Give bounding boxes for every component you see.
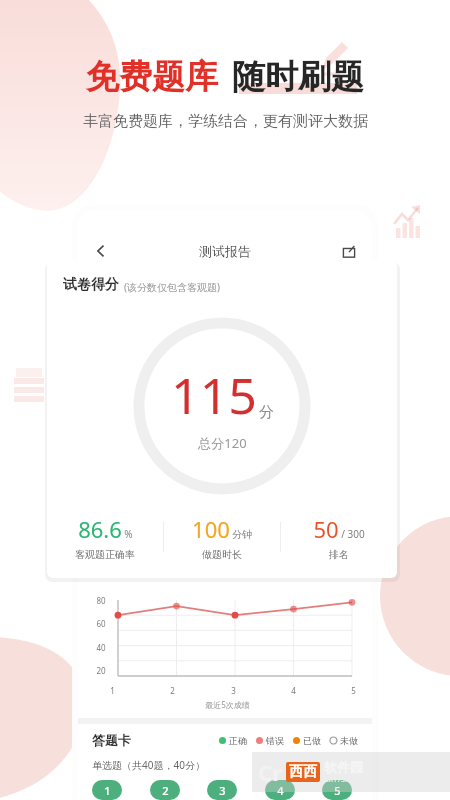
button[interactable]: Share bbox=[338, 240, 360, 262]
staticText: 答题卡 bbox=[92, 732, 131, 748]
button[interactable]: 3 bbox=[207, 780, 237, 800]
staticText: (该分数仅包含客观题) bbox=[124, 280, 220, 294]
staticText: 分钟 bbox=[232, 528, 252, 541]
staticText: 客观题正确率 bbox=[75, 548, 135, 561]
staticText: 2 bbox=[162, 783, 169, 798]
staticText: 4 bbox=[277, 783, 284, 798]
staticText: 最近5次成绩 bbox=[205, 699, 250, 710]
staticText: 错误 bbox=[266, 735, 284, 746]
staticText: 试卷得分 bbox=[63, 276, 119, 294]
staticText: 西西 bbox=[289, 763, 317, 781]
staticText: 1 bbox=[104, 783, 111, 798]
staticText: 单选题（共40题，40分） bbox=[92, 758, 205, 772]
staticText: Cr bbox=[258, 757, 282, 787]
staticText: % bbox=[124, 527, 133, 541]
staticText: 115 bbox=[171, 361, 257, 429]
staticText: 2 bbox=[170, 685, 175, 696]
staticText: 5 bbox=[334, 783, 341, 798]
button[interactable]: 5 bbox=[322, 780, 352, 800]
staticText: 随时刷题 bbox=[232, 56, 364, 98]
staticText: 40 bbox=[96, 642, 106, 653]
staticText: 1 bbox=[110, 685, 115, 696]
staticText: 总分120 bbox=[198, 434, 247, 452]
staticText: 4 bbox=[291, 685, 296, 696]
button[interactable]: 86.6 bbox=[47, 514, 163, 561]
staticText: 60 bbox=[96, 618, 106, 629]
button[interactable]: 4 bbox=[265, 780, 295, 800]
staticText: 5 bbox=[351, 685, 356, 696]
staticText: 分 bbox=[259, 403, 274, 422]
staticText: 3 bbox=[219, 783, 226, 798]
staticText: 未做 bbox=[340, 735, 358, 746]
staticText: 100 bbox=[192, 514, 230, 544]
button[interactable]: 100 bbox=[164, 514, 280, 561]
button[interactable]: Back bbox=[90, 240, 112, 262]
staticText: CR173.COM bbox=[324, 775, 363, 785]
staticText: 50 bbox=[313, 514, 339, 544]
staticText: 20 bbox=[96, 665, 106, 676]
staticText: 已做 bbox=[303, 735, 321, 746]
button[interactable]: 2 bbox=[150, 780, 180, 800]
staticText: 86.6 bbox=[78, 514, 122, 544]
staticText: 丰富免费题库，学练结合，更有测评大数据 bbox=[83, 112, 368, 131]
staticText: / 300 bbox=[341, 527, 365, 541]
button[interactable]: 50 bbox=[281, 514, 397, 561]
staticText: 80 bbox=[96, 595, 106, 606]
staticText: 做题时长 bbox=[202, 548, 242, 561]
staticText: 正确 bbox=[229, 735, 247, 746]
staticText: 3 bbox=[231, 685, 236, 696]
staticText: 排名 bbox=[329, 548, 349, 561]
staticText: 免费题库 bbox=[86, 56, 218, 98]
staticText: 测试报告 bbox=[199, 243, 251, 259]
button[interactable]: 1 bbox=[92, 780, 122, 800]
staticText: 软件园 bbox=[324, 759, 363, 775]
